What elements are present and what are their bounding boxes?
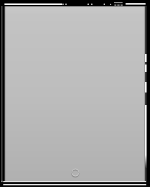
button[interactable]: Home	[0, 0, 150, 187]
